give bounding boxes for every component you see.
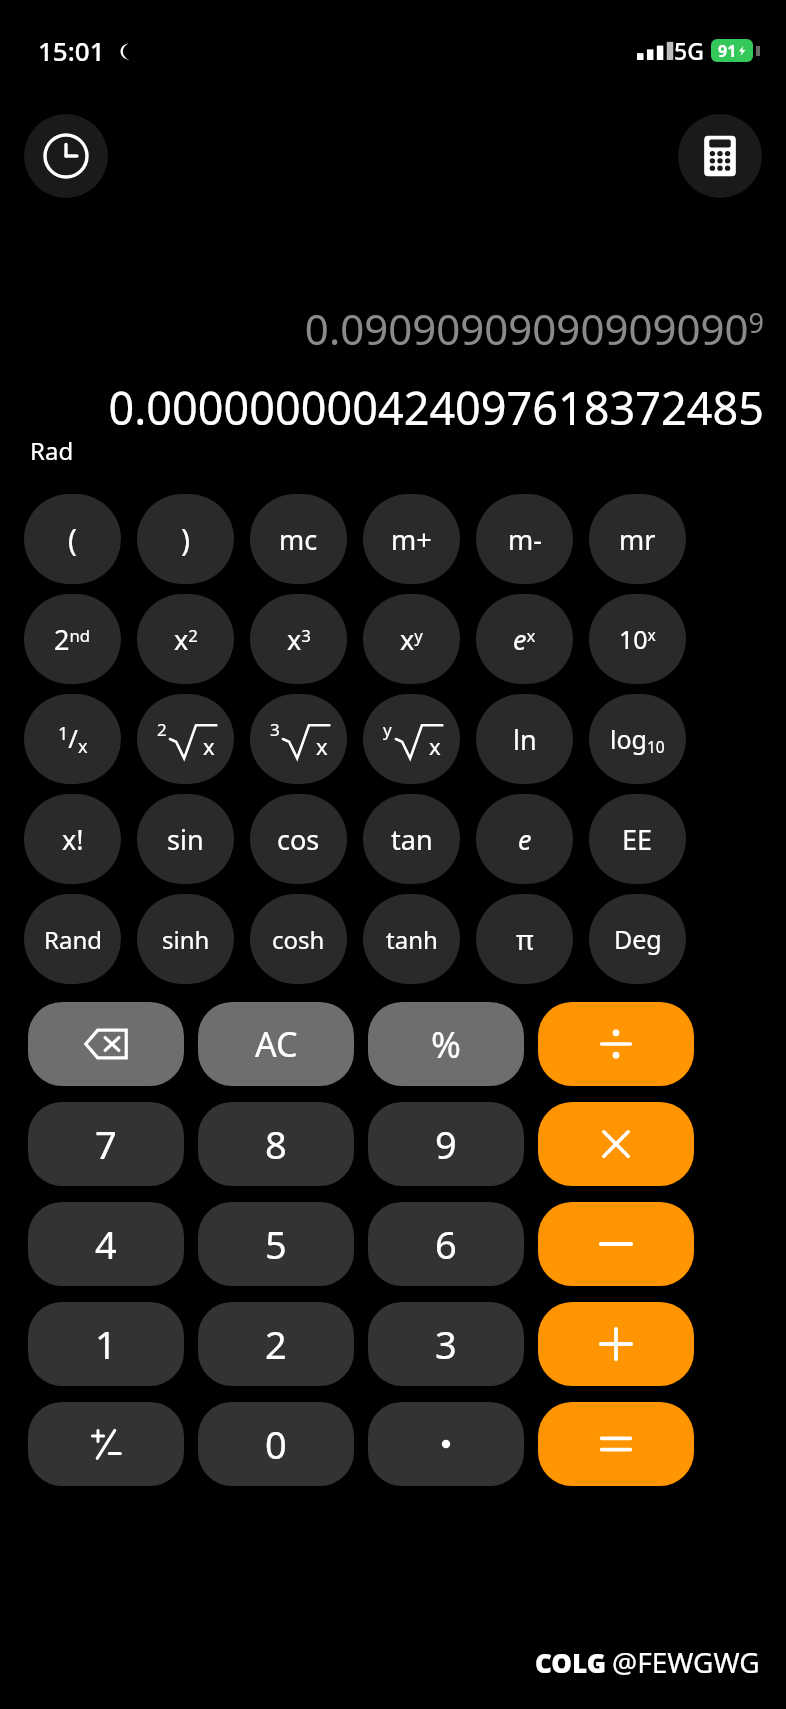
button[interactable]: cos [250,794,347,884]
button[interactable]: Subtract [538,1202,694,1286]
button[interactable]: xy [363,594,460,684]
button[interactable]: 6 [368,1202,524,1286]
button[interactable]: 7 [28,1102,184,1186]
button[interactable]: ( [24,494,121,584]
button[interactable]: 1/x [24,694,121,784]
button[interactable]: π [476,894,573,984]
button[interactable]: Add [538,1302,694,1386]
button[interactable]: x2 [137,594,234,684]
button[interactable]: 4 [28,1202,184,1286]
button[interactable]: Backspace [28,1002,184,1086]
staticText: π [516,921,534,958]
staticText: e [518,821,532,858]
staticText: 7 [95,1118,117,1170]
button[interactable]: 3 [368,1302,524,1386]
staticText: ( [68,519,77,560]
button[interactable]: mc [250,494,347,584]
staticText: ln [513,721,537,758]
staticText: Rad [30,434,74,467]
staticText: 9 [435,1118,457,1170]
staticText: EE [622,821,653,858]
staticText: 2 [157,718,167,741]
button[interactable]: x3 [250,594,347,684]
button[interactable]: sin [137,794,234,884]
staticText: AC [255,1021,298,1067]
button[interactable]: tanh [363,894,460,984]
staticText: Rand [44,923,102,956]
button[interactable]: m- [476,494,573,584]
button[interactable]: mr [589,494,686,584]
button[interactable]: Calculator mode [678,114,762,198]
staticText: 5 [265,1218,287,1270]
button[interactable]: sinh [137,894,234,984]
staticText: tan [391,821,433,858]
button[interactable]: 2 [198,1302,354,1386]
staticText: 0 [265,1418,287,1470]
staticText: log10 [610,722,665,757]
staticText: 1 [95,1318,117,1370]
staticText: tanh [386,923,438,956]
staticText: ) [181,519,190,560]
button[interactable]: % [368,1002,524,1086]
button[interactable]: Deg [589,894,686,984]
staticText: x2 [174,621,198,658]
staticText: cos [277,821,320,858]
button[interactable]: EE [589,794,686,884]
button[interactable]: log10 [589,694,686,784]
staticText: 15:01 [38,33,105,68]
button[interactable]: y [363,694,460,784]
button[interactable]: 10x [589,594,686,684]
staticText: 10x [619,622,656,656]
staticText: COLG [535,1645,606,1680]
button[interactable]: ex [476,594,573,684]
staticText: 6 [435,1218,457,1270]
button[interactable]: 9 [368,1102,524,1186]
button[interactable]: 2nd [24,594,121,684]
button[interactable]: Equals [538,1402,694,1486]
button[interactable]: tan [363,794,460,884]
staticText: y [383,718,392,741]
staticText: 91 [718,40,737,62]
staticText: cosh [272,923,325,956]
staticText: 2 [265,1318,287,1370]
staticText: 3 [270,718,280,741]
button[interactable]: x! [24,794,121,884]
button[interactable]: 1 [28,1302,184,1386]
button[interactable]: Divide [538,1002,694,1086]
button[interactable]: Decimal point [368,1402,524,1486]
button[interactable]: 0 [198,1402,354,1486]
staticText: x [429,731,441,761]
staticText: ex [513,621,536,658]
button[interactable]: History [24,114,108,198]
button[interactable]: 2 [137,694,234,784]
staticText: x3 [287,621,311,658]
staticText: mr [619,521,656,558]
staticText: % [431,1020,461,1069]
staticText: m+ [391,521,432,558]
staticText: sin [167,821,204,858]
button[interactable]: Multiply [538,1102,694,1186]
button[interactable]: ln [476,694,573,784]
button[interactable]: e [476,794,573,884]
button[interactable]: cosh [250,894,347,984]
staticText: 8 [265,1118,287,1170]
staticText: 4 [95,1218,117,1270]
button[interactable]: AC [198,1002,354,1086]
staticText: 5G [674,35,704,66]
button[interactable]: m+ [363,494,460,584]
button[interactable]: 5 [198,1202,354,1286]
staticText: 3 [435,1318,457,1370]
button[interactable]: ) [137,494,234,584]
staticText: x [203,731,215,761]
button[interactable]: Plus minus [28,1402,184,1486]
staticText: x! [62,821,84,858]
staticText: sinh [162,923,210,956]
staticText: m- [508,521,542,558]
button[interactable]: Rand [24,894,121,984]
button[interactable]: 8 [198,1102,354,1186]
button[interactable]: 3 [250,694,347,784]
staticText: Deg [614,922,662,956]
staticText: 1/x [58,720,88,758]
staticText: x [316,731,328,761]
staticText: 2nd [54,621,91,658]
